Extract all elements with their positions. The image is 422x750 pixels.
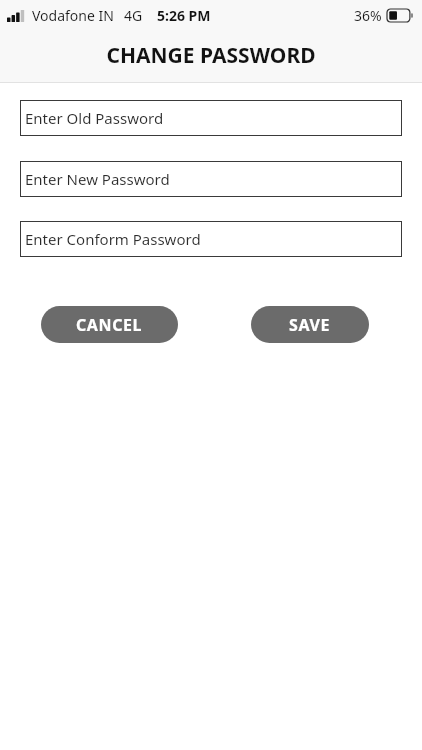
button[interactable]: SAVE (251, 306, 369, 343)
staticText: Enter Conform Password (25, 229, 201, 249)
staticText: CANCEL (76, 314, 143, 336)
button[interactable]: CANCEL (41, 306, 178, 343)
staticText: SAVE (289, 314, 331, 336)
staticText: Enter New Password (25, 169, 170, 189)
staticText: CHANGE PASSWORD (106, 41, 316, 70)
staticText: Enter Old Password (25, 108, 164, 128)
button[interactable]: Enter Conform Password (20, 221, 402, 257)
staticText: 4G (124, 6, 143, 25)
button[interactable]: Enter New Password (20, 161, 402, 197)
button[interactable]: Enter Old Password (20, 100, 402, 136)
staticText: 5:26 PM (157, 6, 211, 25)
staticText: 36% (354, 6, 382, 25)
staticText: Vodafone IN (32, 6, 114, 25)
